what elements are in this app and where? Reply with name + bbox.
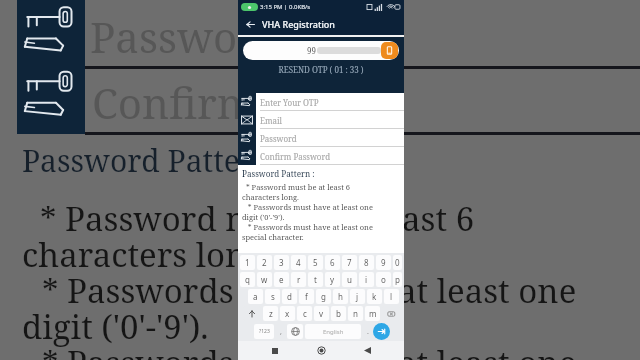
staticText: * Password m [40, 196, 257, 241]
staticText: x [285, 308, 290, 319]
button[interactable]: 99 [243, 41, 399, 60]
staticText: . [367, 327, 369, 337]
staticText: k [372, 291, 377, 302]
staticText: m [369, 308, 377, 319]
staticText: Confirm Password [260, 151, 331, 162]
button[interactable]: English [305, 324, 361, 339]
staticText: digit ('0'-'9'). [22, 304, 209, 349]
staticText: Password [90, 8, 283, 65]
staticText: * Passwords [42, 340, 234, 360]
button[interactable]: k [367, 289, 382, 304]
button[interactable]: l [384, 289, 399, 304]
staticText: t [314, 274, 317, 285]
staticText: Email [260, 115, 283, 126]
button[interactable]: q [240, 272, 255, 287]
staticText: 0 [395, 257, 400, 268]
button[interactable]: v [314, 306, 329, 321]
staticText: w [261, 274, 268, 285]
button[interactable]: Send OTP [381, 42, 398, 59]
button[interactable]: b [331, 306, 346, 321]
button[interactable]: Enter Your OTP [238, 93, 404, 111]
button[interactable]: w [257, 272, 272, 287]
button[interactable]: 8 [359, 255, 374, 270]
button[interactable]: ?123 [254, 324, 274, 339]
staticText: 3 [279, 257, 284, 268]
staticText: English [323, 328, 344, 336]
button[interactable]: 0 [393, 255, 402, 270]
staticText: Enter Your OTP [260, 97, 319, 108]
button[interactable]: o [376, 272, 391, 287]
staticText: 2 [262, 257, 267, 268]
staticText: , [280, 327, 282, 337]
staticText: n [353, 308, 358, 319]
button[interactable]: i [359, 272, 374, 287]
staticText: characters lon [22, 232, 247, 277]
staticText: 4 [296, 257, 301, 268]
staticText: * Password must be at least 6 [242, 182, 350, 192]
staticText: 9 [381, 257, 386, 268]
staticText: d [287, 291, 292, 302]
staticText: l [390, 291, 393, 302]
staticText: Password Patte [22, 140, 240, 181]
button[interactable]: 9 [376, 255, 391, 270]
staticText: 99 [307, 45, 316, 56]
button[interactable]: Back [238, 13, 262, 35]
button[interactable]: m [365, 306, 380, 321]
button[interactable]: 7 [342, 255, 357, 270]
button[interactable]: y [325, 272, 340, 287]
staticText: r [297, 274, 301, 285]
staticText: b [336, 308, 341, 319]
button[interactable]: a [248, 289, 263, 304]
button[interactable]: e [274, 272, 289, 287]
button[interactable]: 5 [308, 255, 323, 270]
button[interactable]: r [291, 272, 306, 287]
button[interactable]: Next [373, 323, 390, 340]
staticText: o [381, 274, 386, 285]
staticText: j [356, 291, 359, 302]
staticText: y [330, 274, 335, 285]
button[interactable]: g [316, 289, 331, 304]
button[interactable]: 2 [257, 255, 272, 270]
button[interactable]: x [280, 306, 295, 321]
button[interactable]: f [299, 289, 314, 304]
button[interactable]: h [333, 289, 348, 304]
button[interactable]: RESEND OTP ( 01 : 33 ) [243, 64, 399, 75]
button[interactable]: Confirm Password [238, 147, 404, 165]
staticText: 8 [364, 257, 369, 268]
button[interactable]: Change language [287, 324, 303, 339]
staticText: v [319, 308, 324, 319]
button[interactable]: , [275, 323, 286, 340]
button[interactable]: Password [238, 129, 404, 147]
button[interactable]: Email [238, 111, 404, 129]
button[interactable]: 6 [325, 255, 340, 270]
button[interactable]: 4 [291, 255, 306, 270]
staticText: q [245, 274, 250, 285]
staticText: Password [260, 133, 297, 144]
button[interactable]: 1 [240, 255, 255, 270]
staticText: 1 [245, 257, 250, 268]
button[interactable]: d [282, 289, 297, 304]
button[interactable]: p [393, 272, 402, 287]
button[interactable]: s [265, 289, 280, 304]
staticText: characters long. [242, 192, 299, 202]
button[interactable]: Backspace [382, 306, 400, 321]
button[interactable]: t [308, 272, 323, 287]
staticText: at least one [398, 268, 577, 313]
staticText: 6 [330, 257, 335, 268]
staticText: s [271, 291, 275, 302]
staticText: digit ('0'-'9'). [242, 212, 285, 222]
button[interactable]: j [350, 289, 365, 304]
button[interactable]: z [263, 306, 278, 321]
button[interactable]: Shift [243, 306, 261, 321]
button[interactable]: 3 [274, 255, 289, 270]
staticText: * Passwords must have at least one [242, 222, 373, 232]
button[interactable]: u [342, 272, 357, 287]
staticText: VHA Registration [262, 18, 335, 30]
button[interactable]: n [348, 306, 363, 321]
button[interactable]: Recents [265, 341, 284, 360]
button[interactable]: Back [358, 341, 377, 360]
button[interactable]: Home [312, 341, 331, 360]
button[interactable]: . [362, 323, 373, 340]
button[interactable]: c [297, 306, 312, 321]
staticText: u [347, 274, 352, 285]
